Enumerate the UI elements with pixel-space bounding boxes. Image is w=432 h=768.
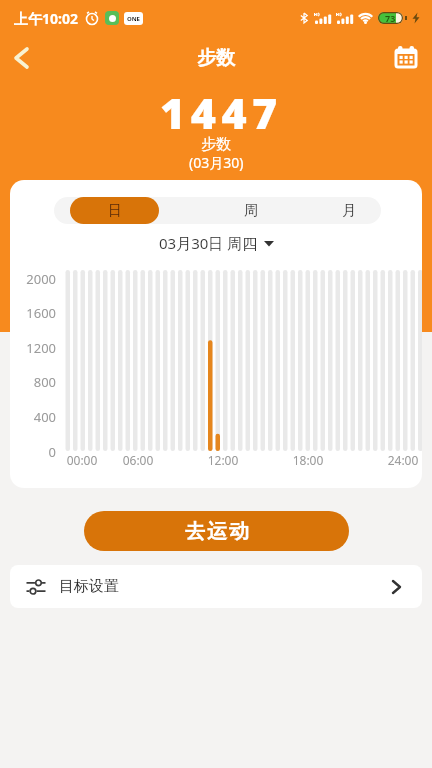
staticText: ONE (127, 15, 140, 23)
staticText: 00:00 (60, 452, 104, 468)
staticText: 步数 (197, 46, 235, 70)
staticText: 0 (10, 443, 56, 461)
staticText: 12:00 (201, 452, 245, 468)
staticText: 去运动 (184, 519, 250, 544)
staticText: 目标设置 (59, 577, 119, 596)
staticText: 73 (385, 12, 396, 24)
staticText: 步数 (201, 135, 231, 154)
button[interactable]: 月 (319, 197, 379, 224)
staticText: 月 (342, 202, 356, 220)
staticText: 18:00 (286, 452, 330, 468)
staticText: 24:00 (381, 452, 422, 468)
button[interactable] (384, 36, 428, 80)
staticText: 1600 (10, 304, 56, 322)
button[interactable]: 目标设置 (10, 565, 422, 608)
staticText: 1447 (160, 83, 283, 142)
staticText: 800 (10, 373, 56, 391)
staticText: 日 (108, 202, 122, 220)
staticText: 06:00 (116, 452, 160, 468)
staticText: 周 (244, 202, 258, 220)
staticText: 03月30日 周四 (159, 233, 258, 253)
button[interactable]: 日 (70, 197, 159, 224)
staticText: 400 (10, 408, 56, 426)
button[interactable] (0, 36, 44, 80)
button[interactable]: 周 (221, 197, 281, 224)
staticText: 上午10:02 (14, 9, 78, 28)
button[interactable]: 03月30日 周四 (159, 232, 274, 254)
staticText: 2000 (10, 270, 56, 288)
button[interactable]: 去运动 (84, 511, 349, 551)
staticText: (03月30) (189, 153, 244, 172)
staticText: 1200 (10, 339, 56, 357)
